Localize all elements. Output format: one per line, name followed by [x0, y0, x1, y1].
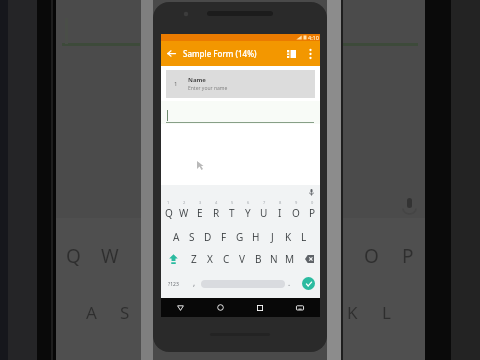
- staticText: W: [179, 206, 189, 220]
- button[interactable]: A: [169, 223, 184, 247]
- staticText: A: [86, 301, 97, 324]
- button[interactable]: More options: [304, 41, 317, 66]
- staticText: P: [402, 243, 414, 269]
- staticText: P: [309, 206, 316, 220]
- staticText: Q: [165, 206, 173, 220]
- staticText: 4:10: [308, 34, 319, 41]
- staticText: N: [270, 252, 278, 266]
- staticText: H: [252, 230, 260, 244]
- staticText: 6: [247, 200, 250, 205]
- staticText: U: [260, 206, 268, 220]
- button[interactable]: Shift: [161, 247, 185, 271]
- staticText: A: [173, 230, 180, 244]
- button[interactable]: X: [202, 247, 218, 271]
- staticText: T: [229, 206, 235, 220]
- button[interactable]: .: [283, 271, 296, 297]
- button[interactable]: K: [280, 223, 296, 247]
- button[interactable]: 5: [224, 199, 240, 223]
- staticText: 5: [231, 200, 234, 205]
- staticText: .: [288, 277, 291, 288]
- button[interactable]: 0: [304, 199, 320, 223]
- button[interactable]: G: [232, 223, 248, 247]
- button[interactable]: S: [184, 223, 200, 247]
- button[interactable]: Back: [161, 298, 200, 317]
- button[interactable]: Enter: [302, 277, 315, 290]
- staticText: I: [278, 206, 282, 220]
- button[interactable]: 9: [288, 199, 304, 223]
- button[interactable]: N: [266, 247, 282, 271]
- button[interactable]: 1: [161, 199, 176, 223]
- staticText: S: [120, 301, 130, 324]
- staticText: 1: [167, 200, 170, 205]
- button[interactable]: ,: [187, 271, 201, 297]
- staticText: 2: [183, 200, 186, 205]
- staticText: 1: [174, 80, 178, 88]
- staticText: D: [204, 230, 212, 244]
- staticText: 9: [295, 200, 298, 205]
- button[interactable]: Backspace: [298, 247, 320, 271]
- staticText: O: [364, 243, 379, 269]
- staticText: W: [101, 243, 119, 269]
- staticText: 4: [215, 200, 218, 205]
- button[interactable]: 8: [272, 199, 288, 223]
- staticText: G: [236, 230, 244, 244]
- staticText: K: [347, 301, 358, 324]
- button[interactable]: Back: [163, 41, 180, 66]
- staticText: Z: [191, 252, 197, 266]
- staticText: X: [207, 252, 213, 266]
- button[interactable]: 3: [192, 199, 208, 223]
- staticText: R: [213, 206, 220, 220]
- button[interactable]: 6: [240, 199, 256, 223]
- staticText: F: [221, 230, 227, 244]
- staticText: M: [285, 252, 295, 266]
- button[interactable]: Switch keyboard: [280, 298, 320, 317]
- button[interactable]: 7: [256, 199, 272, 223]
- staticText: Q: [66, 243, 81, 269]
- staticText: 0: [311, 200, 314, 205]
- staticText: ?123: [168, 281, 179, 288]
- button[interactable]: Voice input: [307, 188, 316, 197]
- button[interactable]: C: [218, 247, 234, 271]
- button[interactable]: L: [296, 223, 312, 247]
- staticText: 7: [263, 200, 266, 205]
- button[interactable]: Home: [200, 298, 240, 317]
- button[interactable]: Save: [283, 41, 300, 66]
- button[interactable]: ?123: [163, 271, 184, 297]
- button[interactable]: M: [282, 247, 298, 271]
- button[interactable]: H: [248, 223, 264, 247]
- button[interactable]: Recents: [240, 298, 280, 317]
- staticText: 3: [199, 200, 202, 205]
- staticText: O: [292, 206, 300, 220]
- staticText: L: [382, 301, 391, 324]
- staticText: Y: [245, 206, 251, 220]
- staticText: K: [285, 230, 292, 244]
- staticText: S: [189, 230, 195, 244]
- button[interactable]: B: [250, 247, 266, 271]
- staticText: J: [271, 230, 274, 244]
- button[interactable]: J: [264, 223, 280, 247]
- staticText: C: [223, 252, 230, 266]
- button[interactable]: 2: [176, 199, 192, 223]
- staticText: L: [301, 230, 307, 244]
- button[interactable]: Z: [185, 247, 202, 271]
- staticText: 8: [279, 200, 282, 205]
- button[interactable]: V: [234, 247, 250, 271]
- staticText: ,: [193, 277, 196, 288]
- staticText: V: [239, 252, 245, 266]
- staticText: E: [197, 206, 203, 220]
- button[interactable]: 1: [166, 70, 315, 98]
- button[interactable]: 4: [208, 199, 224, 223]
- staticText: B: [255, 252, 262, 266]
- staticText: Name: [188, 76, 206, 84]
- staticText: Sample Form (14%): [183, 48, 257, 59]
- staticText: Enter your name: [188, 85, 228, 92]
- button[interactable]: D: [200, 223, 216, 247]
- button[interactable]: F: [216, 223, 232, 247]
